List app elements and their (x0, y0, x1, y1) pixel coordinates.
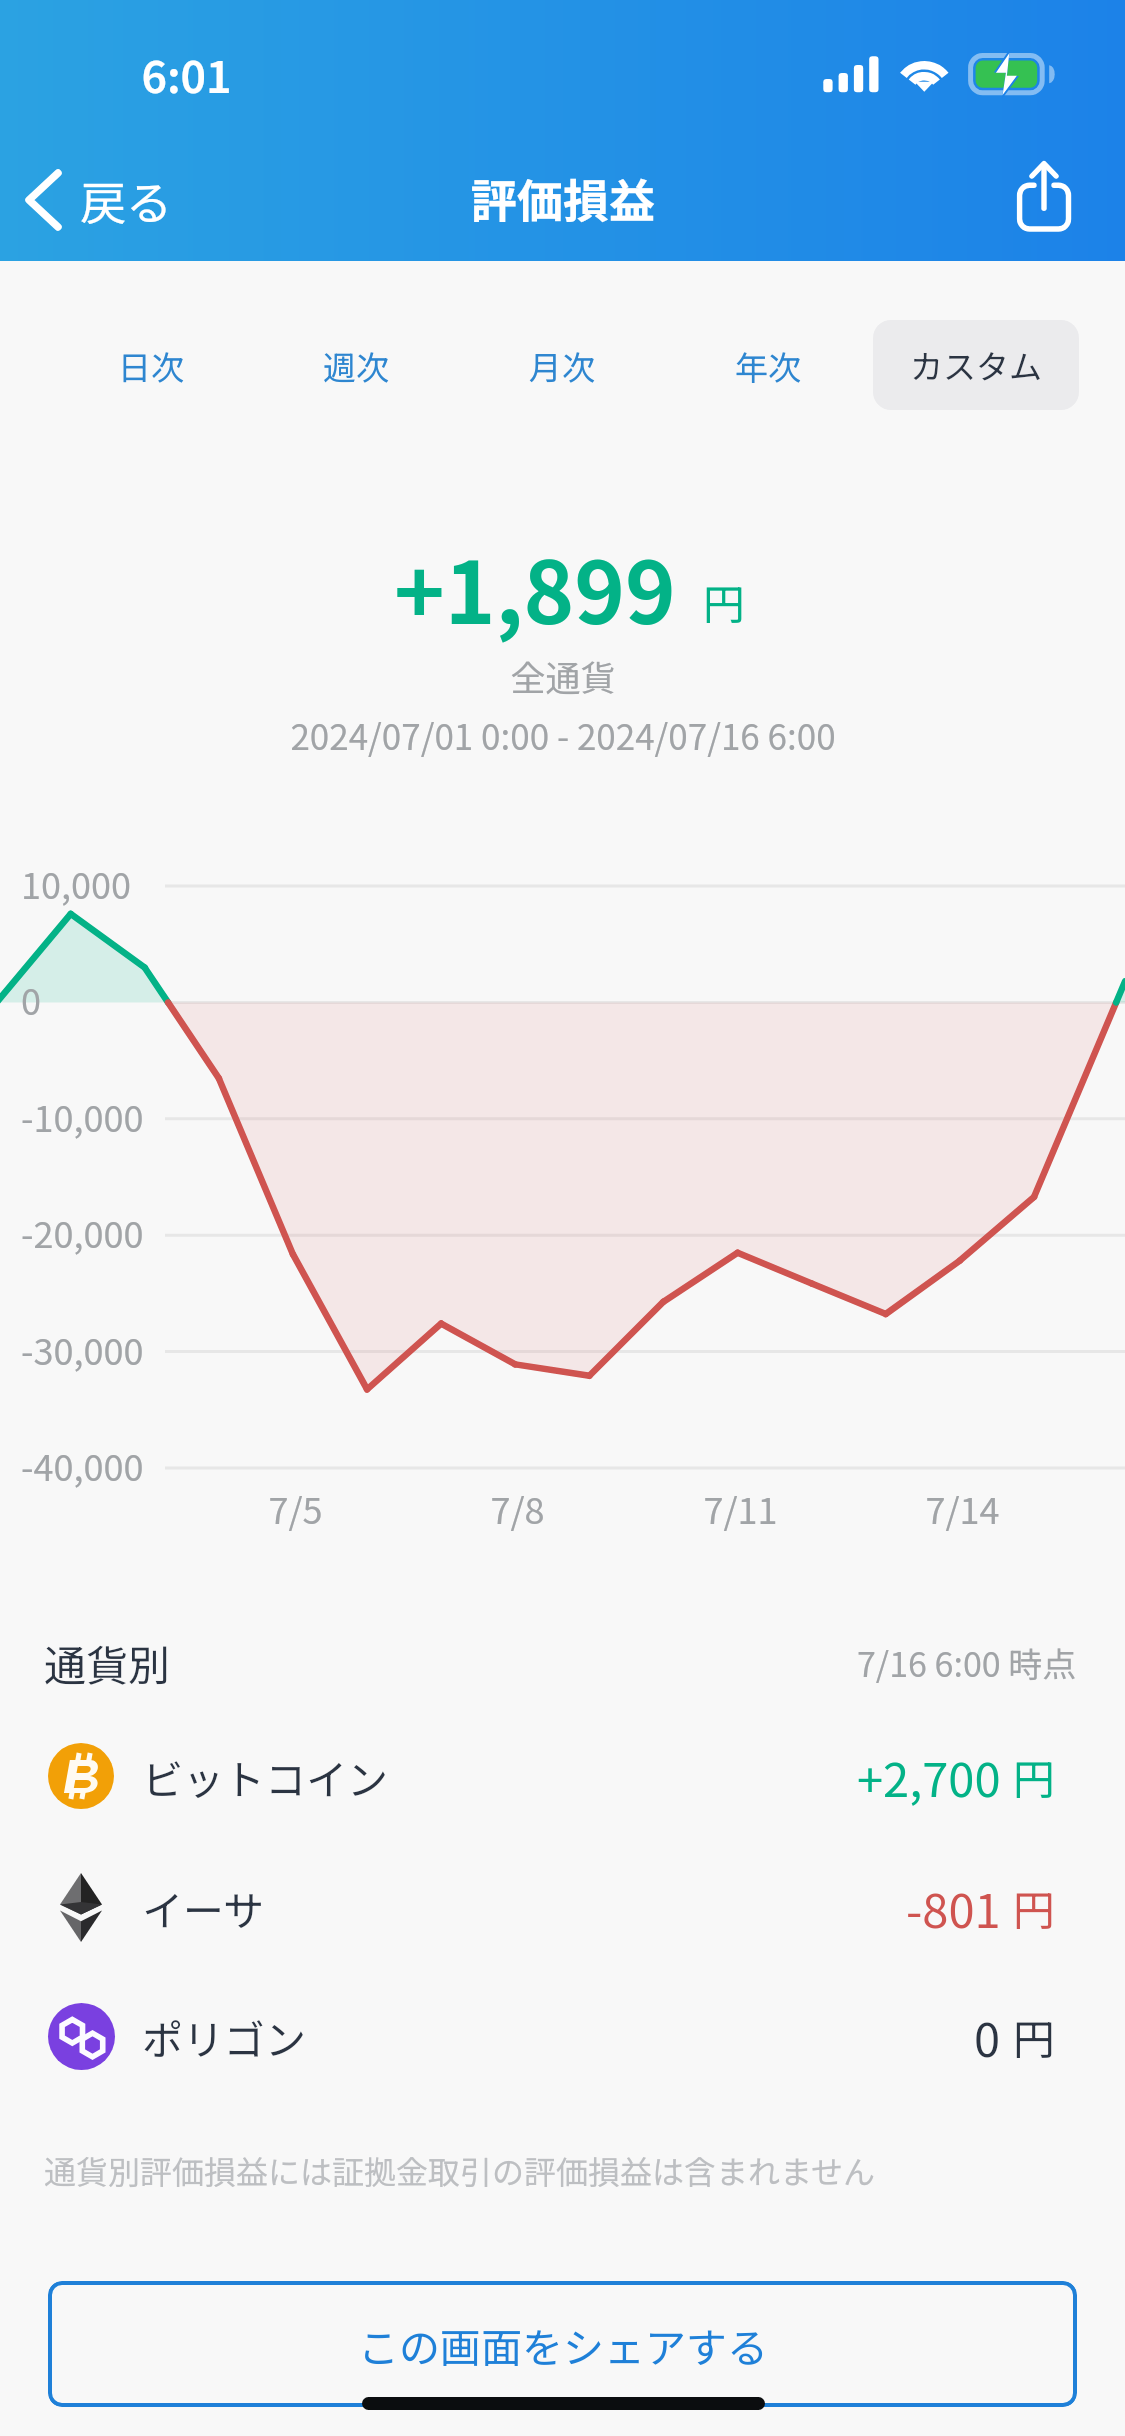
staticText: 円 (703, 571, 746, 632)
button[interactable]: 年次 (673, 316, 863, 416)
button[interactable]: 月次 (467, 316, 657, 416)
staticText: ビットコイン (142, 1747, 388, 1806)
staticText: 円 (1013, 1877, 1056, 1938)
staticText: 全通貨 (510, 650, 616, 701)
staticText: 月次 (529, 342, 595, 390)
staticText: 年次 (735, 342, 801, 390)
staticText: 0 (974, 2002, 1001, 2070)
staticText: ポリゴン (142, 2007, 306, 2066)
staticText: +2,700 (857, 1742, 1001, 1810)
staticText: 戻る (80, 167, 172, 234)
staticText: 7/14 (925, 1482, 1000, 1534)
staticText: -801 (906, 1873, 1001, 1941)
button[interactable]: 戻る (0, 144, 200, 256)
staticText: 週次 (323, 342, 389, 390)
staticText: -10,000 (21, 1090, 144, 1142)
staticText: -30,000 (21, 1323, 144, 1375)
staticText: 通貨別 (44, 1632, 171, 1693)
staticText: +1,899 (394, 524, 676, 649)
button[interactable]: Share (990, 145, 1100, 245)
staticText: 円 (1013, 1746, 1056, 1807)
button[interactable]: カスタム (873, 320, 1079, 410)
staticText: 評価損益 (471, 165, 655, 232)
button[interactable]: 週次 (261, 316, 451, 416)
staticText: 10,000 (21, 857, 131, 909)
staticText: この画面をシェアする (358, 2315, 768, 2374)
button[interactable]: ビットコイン (0, 1714, 1125, 1838)
button[interactable]: この画面をシェアする (48, 2281, 1077, 2407)
staticText: 7/8 (490, 1482, 545, 1534)
button[interactable]: イーサ (0, 1845, 1125, 1969)
staticText: 0 (21, 973, 41, 1025)
staticText: -20,000 (21, 1206, 144, 1258)
staticText: イーサ (142, 1878, 265, 1937)
staticText: -40,000 (21, 1439, 144, 1491)
staticText: 日次 (118, 342, 184, 390)
button[interactable]: ポリゴン (0, 1974, 1125, 2098)
staticText: 7/5 (268, 1482, 323, 1534)
button[interactable]: 日次 (56, 316, 246, 416)
staticText: カスタム (910, 341, 1042, 389)
staticText: 円 (1013, 2006, 1056, 2067)
staticText: 7/11 (703, 1482, 778, 1534)
staticText: 通貨別評価損益には証拠金取引の評価損益は含まれません (44, 2147, 876, 2193)
staticText: 6:01 (141, 42, 232, 106)
staticText: 2024/07/01 0:00 - 2024/07/16 6:00 (290, 709, 836, 760)
staticText: 7/16 6:00 時点 (857, 1638, 1077, 1687)
